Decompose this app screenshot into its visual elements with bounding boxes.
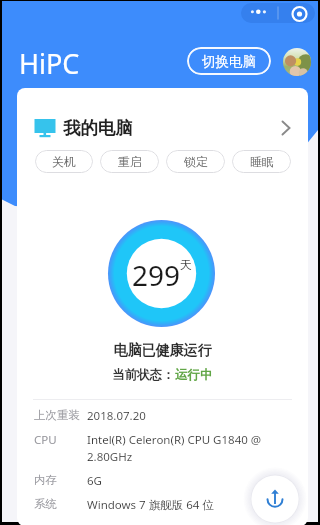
button[interactable]: More options [241,3,315,23]
staticText: 299 [132,256,181,294]
staticText: 运行中 [175,367,213,383]
staticText: 电脑已健康运行 [17,342,308,360]
staticText: CPU [34,432,87,448]
button[interactable]: Profile [283,48,311,76]
staticText: 上次重装 [34,408,87,422]
staticText: 2018.07.20 [87,408,264,424]
staticText: 切换电脑 [202,53,256,70]
staticText: 我的电脑 [63,117,133,139]
button[interactable]: Upload [247,471,303,525]
button[interactable]: 睡眠 [232,150,291,173]
staticText: 天 [180,257,192,272]
staticText: 6G [87,473,264,489]
staticText: 当前状态： [112,367,175,383]
staticText: Windows 7 旗舰版 64 位 [87,497,264,513]
staticText: 内存 [34,473,87,487]
button[interactable]: 上次重装 [34,408,308,424]
staticText: 重启 [118,154,142,169]
button[interactable]: 锁定 [166,150,225,173]
staticText: HiPC [19,45,80,82]
button[interactable]: 内存 [34,473,308,489]
staticText: 睡眠 [250,154,274,169]
button[interactable]: 我的电脑 [17,113,308,143]
staticText: 关机 [52,154,76,169]
staticText: 系统 [34,497,87,511]
button[interactable]: 系统 [34,497,308,513]
staticText: Intel(R) Celeron(R) CPU G1840 @ 2.80GHz [87,432,264,464]
button[interactable]: 关机 [35,150,93,173]
button[interactable]: 重启 [100,150,159,173]
button[interactable]: 切换电脑 [187,47,271,75]
button[interactable]: CPU [34,432,308,464]
staticText: 锁定 [184,154,208,169]
